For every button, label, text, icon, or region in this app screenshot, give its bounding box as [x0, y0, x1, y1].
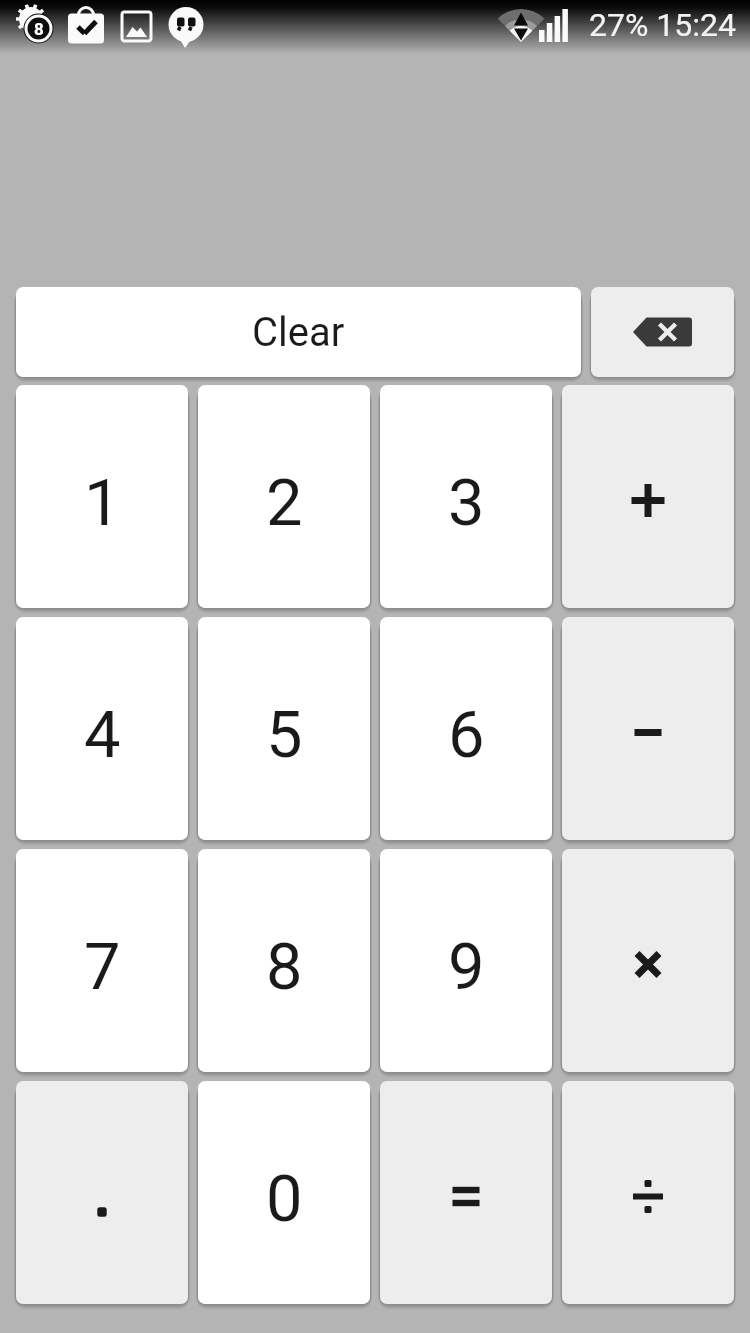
staticText: 8 — [34, 19, 44, 39]
staticText: 1 — [84, 465, 121, 541]
staticText: 2 — [266, 465, 303, 541]
staticText: 6 — [448, 697, 485, 773]
staticText: 5 — [266, 697, 303, 773]
staticText: 4 — [84, 697, 121, 773]
staticText: 3 — [448, 465, 485, 541]
staticText: 8 — [266, 929, 303, 1005]
staticText: Clear — [252, 309, 345, 356]
staticText: 0 — [266, 1161, 303, 1237]
staticText: 27% 15:24 — [589, 6, 737, 44]
staticText: 9 — [448, 929, 485, 1005]
staticText: 7 — [84, 929, 121, 1005]
